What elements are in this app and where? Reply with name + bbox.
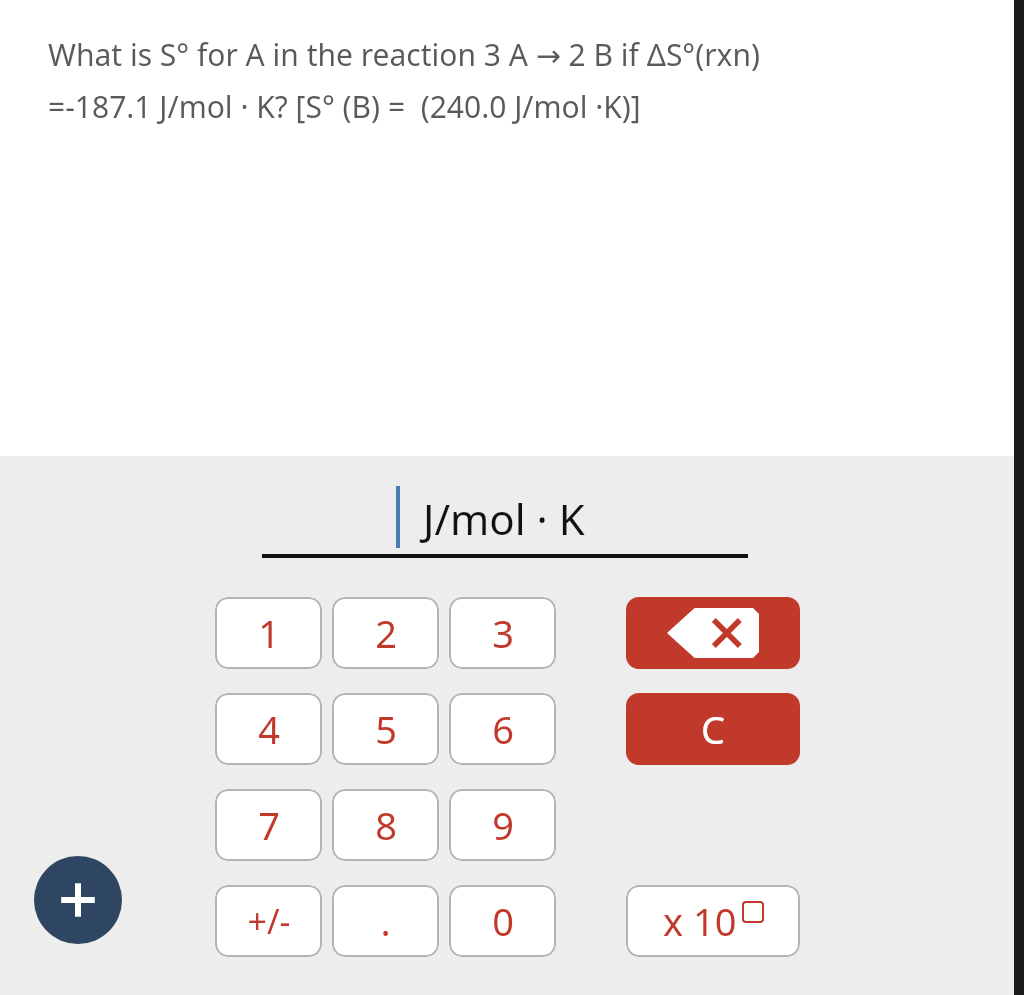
staticText: What is S° for A in the reaction 3 A → 2… [48, 34, 760, 127]
staticText: x 10 [663, 895, 737, 947]
button[interactable]: 4 [215, 693, 322, 765]
button[interactable]: 0 [449, 885, 556, 957]
button[interactable]: 1 [215, 597, 322, 669]
staticText: +/- [247, 898, 291, 944]
staticText: 1 [258, 607, 280, 659]
staticText: 2 [375, 607, 397, 659]
staticText: 0 [492, 895, 514, 947]
button[interactable]: Add [34, 856, 122, 944]
button[interactable]: 6 [449, 693, 556, 765]
button[interactable]: +/- [215, 885, 322, 957]
button[interactable]: 5 [332, 693, 439, 765]
staticText: J/mol · K [423, 490, 585, 547]
staticText: 3 [492, 607, 514, 659]
staticText: 7 [258, 799, 280, 851]
staticText: C [701, 703, 726, 755]
button[interactable]: C [626, 693, 800, 765]
staticText: 6 [492, 703, 514, 755]
staticText: 8 [375, 799, 397, 851]
button[interactable]: x 10 [626, 885, 800, 957]
button[interactable]: 3 [449, 597, 556, 669]
button[interactable]: 7 [215, 789, 322, 861]
staticText: . [380, 895, 391, 947]
button[interactable]: 2 [332, 597, 439, 669]
staticText: 4 [258, 703, 280, 755]
button[interactable]: Backspace [626, 597, 800, 669]
button[interactable]: 9 [449, 789, 556, 861]
staticText: 5 [375, 703, 397, 755]
button[interactable]: 8 [332, 789, 439, 861]
button[interactable]: . [332, 885, 439, 957]
staticText: 9 [492, 799, 514, 851]
